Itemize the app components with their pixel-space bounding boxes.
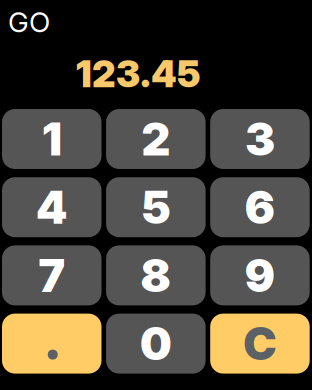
button[interactable]: 7 bbox=[2, 245, 101, 305]
button[interactable]: 9 bbox=[210, 245, 310, 305]
button[interactable]: C bbox=[210, 314, 310, 374]
button[interactable]: 5 bbox=[106, 177, 206, 237]
staticText: 123.45 bbox=[76, 51, 200, 96]
staticText: 0 bbox=[140, 316, 172, 371]
staticText: 2 bbox=[141, 112, 170, 166]
staticText: 9 bbox=[244, 248, 275, 303]
staticText: 6 bbox=[244, 180, 275, 235]
staticText: 8 bbox=[140, 248, 171, 303]
button[interactable]: Decimal point bbox=[2, 314, 101, 374]
staticText: 4 bbox=[36, 180, 68, 235]
staticText: 3 bbox=[245, 112, 275, 166]
staticText: 1 bbox=[42, 112, 62, 166]
staticText: C bbox=[243, 316, 277, 371]
button[interactable]: 4 bbox=[2, 177, 101, 237]
staticText: 5 bbox=[141, 180, 171, 235]
staticText: 7 bbox=[38, 248, 65, 303]
button[interactable]: 8 bbox=[106, 245, 206, 305]
button[interactable]: 6 bbox=[210, 177, 310, 237]
button[interactable]: 1 bbox=[2, 109, 101, 169]
button[interactable]: 0 bbox=[106, 314, 206, 374]
staticText: GO bbox=[8, 5, 50, 39]
button[interactable]: 2 bbox=[106, 109, 206, 169]
button[interactable]: 3 bbox=[210, 109, 310, 169]
